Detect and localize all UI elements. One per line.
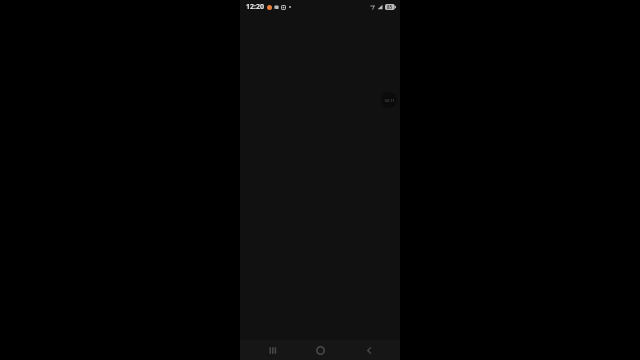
staticText: 85 (387, 4, 393, 10)
staticText: 12:20 (246, 2, 264, 12)
button[interactable]: Home (303, 340, 337, 360)
button[interactable]: Back (352, 340, 386, 360)
staticText: 02:11 (384, 98, 395, 103)
button[interactable]: Recent apps (255, 340, 289, 360)
button[interactable]: Floating timer bubble (381, 92, 397, 108)
